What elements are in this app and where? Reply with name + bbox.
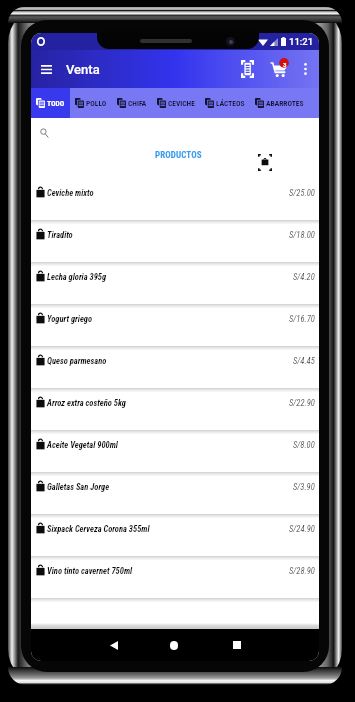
button[interactable]: Home [158, 629, 190, 661]
button[interactable]: Select products [256, 152, 274, 172]
staticText: Sixpack Cerveza Corona 355ml [47, 524, 150, 534]
button[interactable]: Galletas San Jorge [31, 476, 319, 514]
staticText: PRODUCTOS [155, 150, 202, 161]
button[interactable]: More options [294, 58, 316, 80]
staticText: Vino tinto cavernet 750ml [47, 566, 133, 576]
button[interactable]: Tiradito [31, 224, 319, 262]
staticText: Tiradito [47, 230, 73, 240]
button[interactable]: Sixpack Cerveza Corona 355ml [31, 518, 319, 556]
staticText: S/25.00 [289, 188, 315, 198]
staticText: Lecha gloria 395g [47, 272, 107, 282]
staticText: CHIFA [128, 99, 147, 108]
button[interactable]: CHIFA [112, 88, 152, 118]
button[interactable]: CEVICHE [152, 88, 200, 118]
button[interactable]: POLLO [70, 88, 112, 118]
staticText: Galletas San Jorge [47, 482, 110, 492]
staticText: 11:21 [289, 36, 314, 47]
staticText: Yogurt griego [47, 314, 93, 324]
staticText: S/24.90 [289, 524, 315, 534]
button[interactable]: Search [34, 123, 54, 143]
staticText: S/8.00 [293, 440, 315, 450]
staticText: S/3.90 [293, 482, 315, 492]
button[interactable]: Shopping cart [264, 54, 294, 84]
button[interactable]: Yogurt griego [31, 308, 319, 346]
staticText: S/4.20 [293, 272, 315, 282]
button[interactable]: Recent apps [221, 629, 253, 661]
staticText: LÁCTEOS [216, 99, 245, 108]
button[interactable]: LÁCTEOS [200, 88, 250, 118]
button[interactable]: ABARROTES [250, 88, 309, 118]
staticText: ABARROTES [266, 99, 304, 108]
button[interactable]: Queso parmesano [31, 350, 319, 388]
staticText: S/28.90 [289, 566, 315, 576]
staticText: TODO [47, 99, 65, 108]
button[interactable]: Scan barcode [232, 54, 262, 84]
button[interactable]: Back [98, 629, 130, 661]
button[interactable]: Arroz extra costeño 5kg [31, 392, 319, 430]
button[interactable]: Lecha gloria 395g [31, 266, 319, 304]
button[interactable]: Vino tinto cavernet 750ml [31, 560, 319, 598]
staticText: Aceite Vegetal 900ml [47, 440, 118, 450]
button[interactable]: Menu [31, 54, 61, 84]
button[interactable]: Aceite Vegetal 900ml [31, 434, 319, 472]
staticText: 3 [283, 61, 287, 68]
staticText: S/18.00 [289, 230, 315, 240]
staticText: POLLO [86, 99, 107, 108]
button[interactable]: TODO [31, 88, 70, 118]
staticText: Venta [66, 62, 100, 77]
staticText: Arroz extra costeño 5kg [47, 398, 126, 408]
staticText: Queso parmesano [47, 356, 107, 366]
staticText: S/4.45 [293, 356, 315, 366]
staticText: S/16.70 [289, 314, 315, 324]
staticText: CEVICHE [168, 99, 195, 108]
staticText: Ceviche mixto [47, 188, 94, 198]
staticText: S/22.90 [289, 398, 315, 408]
button[interactable]: Ceviche mixto [31, 182, 319, 220]
